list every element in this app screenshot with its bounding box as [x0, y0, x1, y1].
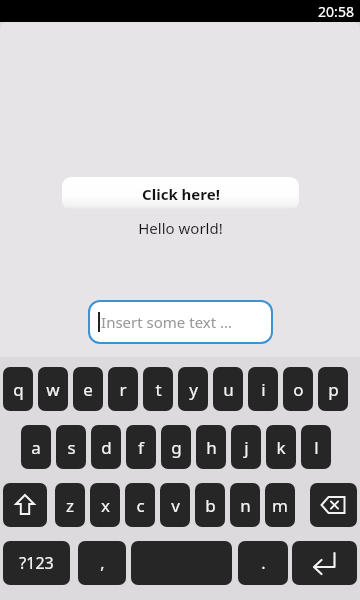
staticText: p [328, 378, 339, 401]
button[interactable]: . [238, 541, 288, 585]
staticText: w [46, 378, 60, 401]
staticText: x [101, 494, 110, 517]
button[interactable]: d [91, 425, 121, 469]
button[interactable]: g [161, 425, 191, 469]
staticText: . [261, 552, 266, 574]
staticText: ?123 [19, 552, 54, 574]
button[interactable]: c [125, 483, 155, 527]
staticText: q [13, 378, 24, 401]
button[interactable]: Enter [292, 541, 357, 585]
staticText: e [83, 378, 93, 401]
button[interactable]: i [248, 367, 278, 411]
staticText: , [100, 552, 105, 574]
staticText: g [171, 436, 182, 459]
staticText: y [189, 378, 198, 401]
button[interactable]: z [55, 483, 85, 527]
button[interactable]: v [160, 483, 190, 527]
staticText: l [314, 436, 319, 459]
staticText: Insert some text … [101, 312, 232, 332]
button[interactable]: k [266, 425, 296, 469]
staticText: z [66, 494, 74, 517]
button[interactable]: n [230, 483, 260, 527]
button[interactable]: a [21, 425, 51, 469]
button[interactable]: w [38, 367, 68, 411]
button[interactable]: Space [131, 541, 232, 585]
staticText: a [31, 436, 41, 459]
button[interactable]: , [78, 541, 126, 585]
staticText: s [67, 436, 76, 459]
staticText: r [119, 378, 127, 401]
button[interactable]: m [265, 483, 295, 527]
staticText: v [171, 494, 180, 517]
button[interactable]: h [196, 425, 226, 469]
button[interactable]: t [143, 367, 173, 411]
staticText: k [276, 436, 286, 459]
staticText: Hello world! [138, 218, 223, 238]
button[interactable]: u [213, 367, 243, 411]
staticText: c [136, 494, 145, 517]
staticText: d [101, 436, 112, 459]
button[interactable]: r [108, 367, 138, 411]
button[interactable]: y [178, 367, 208, 411]
staticText: f [138, 436, 144, 459]
button[interactable]: Shift [3, 483, 47, 527]
button[interactable]: ?123 [3, 541, 70, 585]
button[interactable]: x [90, 483, 120, 527]
staticText: n [240, 494, 251, 517]
staticText: o [293, 378, 304, 401]
button[interactable]: e [73, 367, 103, 411]
button[interactable]: Click here! [62, 177, 299, 210]
staticText: t [155, 378, 162, 401]
button[interactable]: Backspace [310, 483, 357, 527]
staticText: i [261, 378, 266, 401]
button[interactable]: f [126, 425, 156, 469]
button[interactable]: p [318, 367, 348, 411]
button[interactable]: q [3, 367, 33, 411]
staticText: h [206, 436, 217, 459]
button[interactable]: s [56, 425, 86, 469]
button[interactable]: l [301, 425, 331, 469]
staticText: Click here! [142, 184, 220, 204]
staticText: b [205, 494, 216, 517]
button[interactable]: Insert some text … [90, 302, 271, 342]
button[interactable]: b [195, 483, 225, 527]
button[interactable]: o [283, 367, 313, 411]
staticText: 20:58 [318, 2, 354, 21]
staticText: j [244, 436, 249, 459]
button[interactable]: j [231, 425, 261, 469]
staticText: u [223, 378, 234, 401]
staticText: m [272, 494, 288, 517]
